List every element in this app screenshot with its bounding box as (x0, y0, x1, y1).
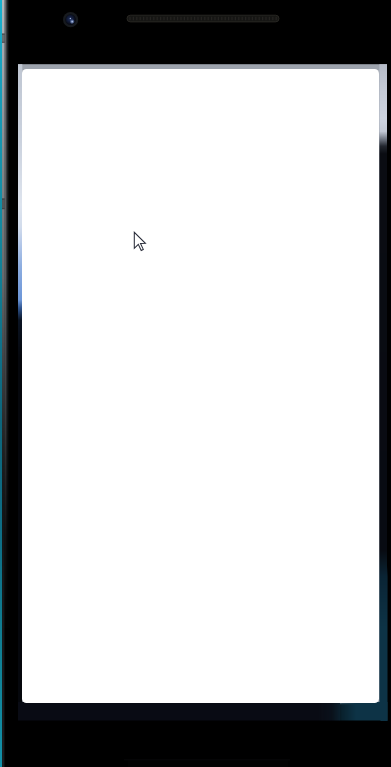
button[interactable]: App content (22, 69, 379, 703)
